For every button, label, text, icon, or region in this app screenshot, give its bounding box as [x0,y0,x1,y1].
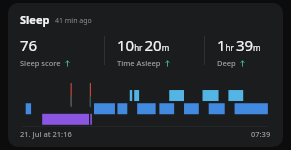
staticText: Time Asleep [117,58,161,68]
button[interactable]: 1hr 39m [205,35,283,69]
staticText: 41 min ago [55,16,92,26]
staticText: Sleep score [20,58,61,68]
staticText: Sleep [20,12,50,27]
staticText: 76 [20,35,38,55]
staticText: 10hr 20m [117,35,170,55]
button[interactable]: Sleep stages chart [8,83,283,127]
button[interactable]: Sleep [8,3,283,147]
staticText: 07:39 [251,129,271,139]
staticText: 21. Jul at 21:16 [20,129,72,139]
button[interactable]: 76 [8,35,104,69]
staticText: 1hr 39m [217,35,261,55]
button[interactable]: 10hr 20m [105,35,204,69]
staticText: Deep [217,58,236,68]
